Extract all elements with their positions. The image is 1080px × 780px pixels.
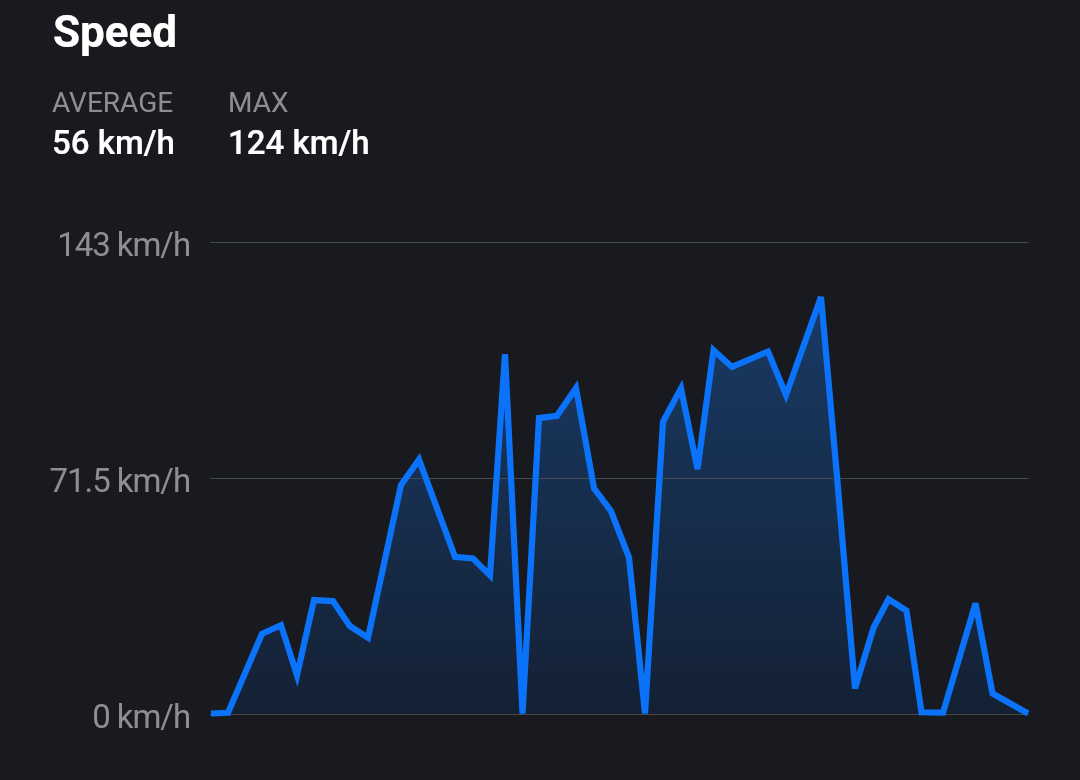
staticText: 124 km/h <box>228 123 370 162</box>
staticText: Speed <box>53 6 178 58</box>
staticText: MAX <box>228 86 289 119</box>
staticText: 56 km/h <box>52 123 175 162</box>
button[interactable]: AVERAGE <box>44 80 204 164</box>
staticText: 71.5 km/h <box>0 461 190 495</box>
staticText: AVERAGE <box>52 86 174 119</box>
button[interactable]: Speed over time chart <box>210 202 1029 734</box>
staticText: 0 km/h <box>0 697 190 731</box>
button[interactable]: MAX <box>220 80 370 164</box>
button[interactable]: Speed <box>40 0 190 68</box>
staticText: 143 km/h <box>0 225 190 259</box>
